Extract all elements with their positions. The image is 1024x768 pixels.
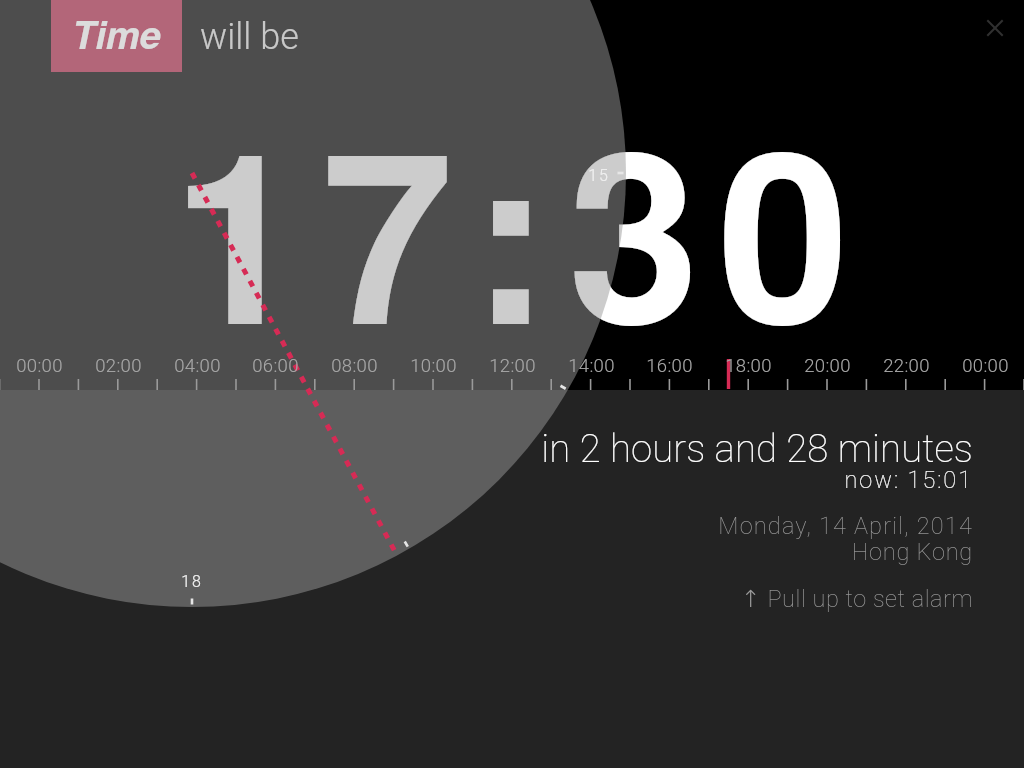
staticText: will be (200, 16, 299, 58)
staticText: now: 15:01 (844, 466, 973, 494)
staticText: 18 (181, 572, 203, 591)
staticText: 15 (588, 166, 610, 185)
staticText: 08:00 (331, 355, 378, 377)
staticText: 10:00 (410, 355, 457, 377)
staticText: 17:30 (172, 57, 868, 396)
staticText: 20:00 (804, 355, 851, 377)
staticText: 02:00 (95, 355, 142, 377)
staticText: Hong Kong (851, 538, 973, 566)
button[interactable]: Close (971, 4, 1019, 52)
staticText: 22:00 (883, 355, 930, 377)
staticText: 18:00 (725, 355, 772, 377)
button[interactable]: Time (51, 0, 182, 72)
staticText: 12:00 (489, 355, 536, 377)
staticText: 00:00 (16, 355, 63, 377)
staticText: 06:00 (252, 355, 299, 377)
staticText: Time (72, 6, 161, 60)
staticText: 14:00 (568, 355, 615, 377)
staticText: ↑ Pull up to set alarm (741, 585, 973, 613)
staticText: 16:00 (646, 355, 693, 377)
staticText: 04:00 (174, 355, 221, 377)
staticText: in 2 hours and 28 minutes (541, 426, 973, 471)
staticText: Monday, 14 April, 2014 (718, 512, 973, 540)
staticText: 00:00 (962, 355, 1009, 377)
